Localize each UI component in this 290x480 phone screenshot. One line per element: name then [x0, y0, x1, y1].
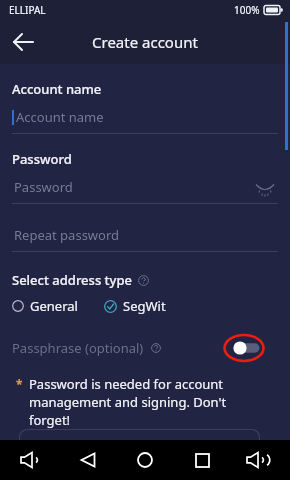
staticText: General — [30, 297, 78, 315]
staticText: Password is needed for account managemen… — [29, 375, 254, 429]
button[interactable]: Show password — [252, 178, 278, 196]
staticText: ELLIPAL — [9, 3, 46, 17]
button[interactable]: SegWit — [104, 297, 166, 315]
button[interactable]: General — [12, 297, 78, 315]
button[interactable]: Recents — [177, 440, 227, 480]
staticText: Account name — [16, 108, 104, 126]
button[interactable]: Passphrase toggle — [231, 333, 265, 363]
staticText: Select address type — [12, 271, 132, 289]
button[interactable]: Back — [63, 440, 113, 480]
staticText: Create account — [92, 32, 198, 52]
staticText: Password — [14, 178, 73, 196]
staticText: Passphrase (optional) — [12, 339, 144, 357]
staticText: Password — [12, 150, 72, 168]
button[interactable]: Volume up — [233, 440, 283, 480]
button[interactable]: Back — [4, 23, 42, 61]
staticText: SegWit — [123, 297, 166, 315]
staticText: * — [16, 376, 23, 392]
staticText: 100% — [234, 3, 260, 17]
button[interactable]: Home — [120, 440, 170, 480]
button[interactable]: Volume down — [7, 440, 57, 480]
staticText: Repeat password — [14, 226, 120, 244]
staticText: Account name — [12, 80, 102, 98]
